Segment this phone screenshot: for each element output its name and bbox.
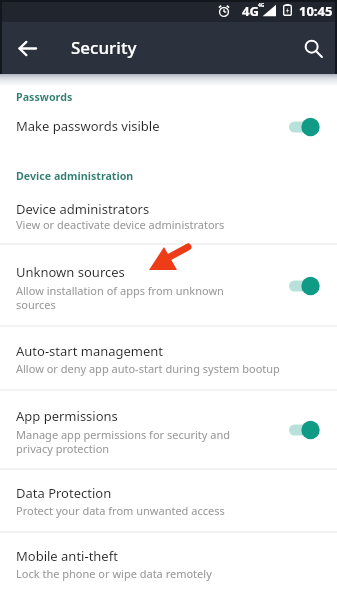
staticText: sources bbox=[16, 297, 56, 312]
button[interactable] bbox=[0, 399, 337, 457]
button[interactable] bbox=[0, 192, 337, 233]
staticText: 4G bbox=[258, 2, 265, 9]
button[interactable] bbox=[0, 109, 337, 143]
button[interactable] bbox=[0, 539, 337, 582]
staticText: Allow installation of apps from unknown bbox=[16, 283, 224, 298]
staticText: Data Protection bbox=[16, 484, 112, 502]
staticText: App permissions bbox=[16, 407, 118, 425]
staticText: Device administration bbox=[16, 169, 134, 184]
staticText: Unknown sources bbox=[16, 263, 125, 281]
staticText: Passwords bbox=[16, 90, 73, 105]
button[interactable] bbox=[0, 334, 337, 377]
button[interactable] bbox=[0, 255, 337, 313]
button[interactable]: Search bbox=[293, 28, 335, 70]
staticText: Protect your data from unwanted access bbox=[16, 503, 225, 518]
button[interactable]: Toggle switch, on bbox=[286, 115, 324, 139]
button[interactable] bbox=[0, 476, 337, 519]
staticText: privacy protection bbox=[16, 441, 110, 456]
staticText: 10:45 bbox=[299, 2, 333, 20]
staticText: Manage app permissions for security and bbox=[16, 427, 231, 442]
staticText: Lock the phone or wipe data remotely bbox=[16, 566, 212, 581]
staticText: Mobile anti-theft bbox=[16, 547, 118, 565]
staticText: Allow or deny app auto-start during syst… bbox=[16, 361, 280, 376]
staticText: Device administrators bbox=[16, 200, 150, 218]
button[interactable]: Toggle switch, on bbox=[286, 274, 324, 298]
button[interactable]: Toggle switch, on bbox=[286, 418, 324, 442]
staticText: 4G bbox=[242, 2, 259, 20]
staticText: View or deactivate device administrators bbox=[16, 217, 225, 232]
staticText: Security bbox=[71, 36, 137, 59]
staticText: Make passwords visible bbox=[16, 117, 160, 135]
button[interactable]: Back bbox=[4, 25, 50, 71]
staticText: Auto-start management bbox=[16, 342, 164, 360]
